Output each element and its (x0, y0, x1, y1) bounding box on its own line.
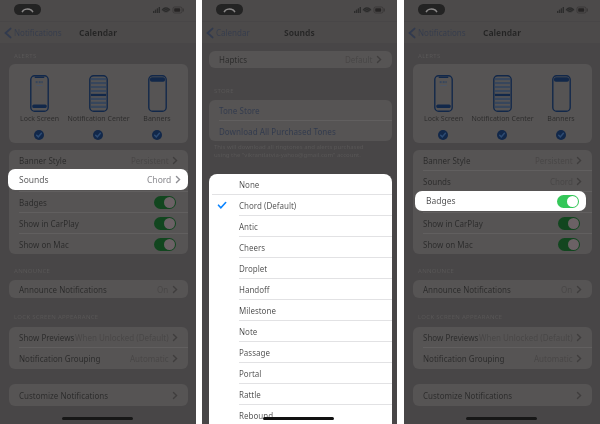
button[interactable]: Toggle setting (557, 195, 579, 208)
button[interactable]: Banner Style (413, 150, 592, 171)
button[interactable]: Handoff (209, 279, 392, 300)
staticText: ANNOUNCE (14, 267, 51, 275)
button[interactable]: Customize Notifications (413, 384, 592, 406)
button[interactable]: Badges (9, 192, 188, 213)
staticText: Announce Notifications (19, 284, 107, 295)
staticText: Download All Purchased Tones (219, 126, 336, 137)
staticText: Show on Mac (423, 239, 473, 250)
staticText: Customize Notifications (423, 390, 513, 401)
button[interactable]: Customize Notifications (9, 384, 188, 406)
button[interactable]: Banners (127, 64, 187, 143)
button[interactable]: Announce Notifications (413, 280, 592, 298)
button[interactable]: Notification Grouping (9, 348, 188, 369)
staticText: None (239, 179, 260, 190)
staticText: Notification Grouping (19, 353, 101, 364)
staticText: Badges (423, 197, 451, 208)
button[interactable]: Notification Center (68, 64, 128, 143)
button[interactable]: Sounds (413, 171, 592, 192)
button[interactable]: Milestone (209, 300, 392, 321)
staticText: Droplet (239, 263, 268, 274)
button[interactable]: Banners (531, 64, 591, 143)
button[interactable]: Tone Store (209, 100, 392, 121)
staticText: This will download all ringtones and ale… (214, 143, 379, 159)
button[interactable]: Chord (Default) (209, 195, 392, 216)
button[interactable]: Passage (209, 342, 392, 363)
staticText: Rebound (239, 410, 274, 421)
button[interactable]: Show on Mac (413, 234, 592, 254)
button[interactable]: Notifications (0, 22, 62, 43)
staticText: When Unlocked (Default) (479, 332, 573, 343)
staticText: Portal (239, 368, 262, 379)
button[interactable]: Notification Grouping (413, 348, 592, 369)
staticText: When Unlocked (Default) (75, 332, 169, 343)
button[interactable]: Badges (415, 191, 586, 211)
button[interactable]: Show Previews (9, 327, 188, 348)
button[interactable]: Notifications (404, 22, 466, 43)
button[interactable]: Antic (209, 216, 392, 237)
staticText: LOCK SCREEN APPEARANCE (14, 313, 99, 321)
button[interactable]: Notification Center (472, 64, 532, 143)
button[interactable]: Sounds (9, 171, 188, 192)
button[interactable]: Lock Screen (9, 64, 69, 143)
staticText: Automatic (534, 353, 573, 364)
staticText: Calendar (79, 27, 117, 39)
staticText: STORE (214, 87, 234, 95)
staticText: Chord (Default) (239, 200, 297, 211)
staticText: Show in CarPlay (19, 218, 79, 229)
button[interactable]: Toggle setting (558, 217, 580, 230)
button[interactable]: Toggle setting (558, 238, 580, 251)
button[interactable]: Calendar (202, 22, 250, 43)
staticText: ALERTS (14, 52, 37, 60)
staticText: Chord (550, 176, 573, 187)
button[interactable]: Announce Notifications (9, 280, 188, 298)
staticText: Announce Notifications (423, 284, 511, 295)
button[interactable]: Show in CarPlay (413, 213, 592, 234)
staticText: ALERTS (418, 52, 441, 60)
button[interactable]: Sounds (8, 169, 188, 190)
staticText: Tone Store (219, 105, 260, 116)
button[interactable]: Droplet (209, 258, 392, 279)
staticText: Cheers (239, 242, 266, 253)
staticText: Milestone (239, 305, 276, 316)
staticText: Badges (19, 197, 47, 208)
staticText: Default (345, 54, 373, 65)
staticText: Notification Grouping (423, 353, 505, 364)
staticText: On (157, 284, 169, 295)
button[interactable]: Rebound (209, 405, 392, 424)
button[interactable]: Show in CarPlay (9, 213, 188, 234)
staticText: Haptics (219, 54, 247, 65)
button[interactable]: Toggle setting (558, 196, 580, 209)
staticText: Sounds (19, 176, 47, 187)
button[interactable]: Show on Mac (9, 234, 188, 254)
button[interactable]: None (209, 174, 392, 195)
staticText: Chord (146, 176, 169, 187)
button[interactable]: Note (209, 321, 392, 342)
button[interactable]: Toggle setting (154, 217, 176, 230)
button[interactable]: Download All Purchased Tones (209, 121, 392, 141)
staticText: Show Previews (19, 332, 75, 343)
button[interactable]: Badges (413, 192, 592, 213)
button[interactable]: Show Previews (413, 327, 592, 348)
staticText: Sounds (284, 27, 315, 39)
staticText: Calendar (483, 27, 521, 39)
staticText: Antic (239, 221, 258, 232)
button[interactable]: Toggle setting (154, 238, 176, 251)
button[interactable]: Cheers (209, 237, 392, 258)
staticText: Banners (143, 114, 171, 124)
staticText: Show in CarPlay (423, 218, 483, 229)
button[interactable]: Haptics (209, 51, 392, 68)
staticText: Show on Mac (19, 239, 69, 250)
staticText: Customize Notifications (19, 390, 109, 401)
button[interactable]: Toggle setting (154, 196, 176, 209)
button[interactable]: Banner Style (9, 150, 188, 171)
staticText: Note (239, 326, 258, 337)
button[interactable]: Portal (209, 363, 392, 384)
button[interactable]: Rattle (209, 384, 392, 405)
staticText: Notifications (418, 27, 466, 38)
staticText: Notification Center (67, 114, 130, 124)
staticText: Notifications (14, 27, 62, 38)
staticText: Persistent (131, 155, 169, 166)
staticText: Banner Style (423, 155, 471, 166)
button[interactable]: Lock Screen (413, 64, 473, 143)
staticText: Rattle (239, 389, 261, 400)
